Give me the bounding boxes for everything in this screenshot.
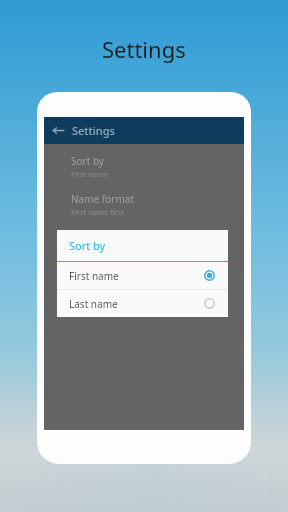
button[interactable]: First name [57,262,228,289]
button[interactable]: Name format [44,190,244,219]
button[interactable]: Back [44,117,72,144]
staticText: First name [71,169,109,179]
staticText: Settings [72,123,115,138]
staticText: Sort by [71,154,104,168]
staticText: First name first [71,207,125,217]
staticText: Name format [71,192,134,206]
staticText: First name [69,269,119,283]
staticText: Settings [102,34,186,64]
button[interactable]: Sort by [44,152,244,181]
button[interactable]: Last name [57,290,228,317]
staticText: Last name [69,297,118,311]
staticText: Sort by [69,238,106,253]
